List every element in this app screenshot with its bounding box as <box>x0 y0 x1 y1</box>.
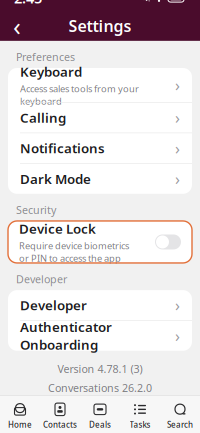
staticText: Search <box>167 419 193 430</box>
button[interactable]: Home <box>0 404 40 429</box>
staticText: Require device biometrics or PIN to acce… <box>19 239 129 264</box>
staticText: Dark Mode <box>20 170 91 188</box>
staticText: Security <box>16 203 56 217</box>
button[interactable]: Keyboard <box>8 68 192 102</box>
staticText: Developer <box>20 296 87 314</box>
staticText: 2:45 <box>14 0 42 8</box>
staticText: Settings <box>68 15 131 36</box>
button[interactable]: Back <box>5 14 29 38</box>
button[interactable]: Developer <box>8 290 192 320</box>
button[interactable]: Notifications <box>8 133 192 163</box>
staticText: ‹ <box>13 9 21 43</box>
button[interactable]: Deals <box>80 404 120 429</box>
staticText: Home <box>8 419 32 430</box>
staticText: Contacts <box>43 419 77 430</box>
button[interactable]: Calling <box>8 103 192 133</box>
button[interactable]: Dark Mode <box>8 164 192 194</box>
staticText: Calling <box>20 109 66 126</box>
staticText: › <box>175 138 180 159</box>
staticText: › <box>175 325 180 346</box>
staticText: Developer <box>16 272 67 286</box>
staticText: Device Lock <box>19 220 96 237</box>
staticText: Keyboard <box>20 63 82 80</box>
staticText: Notifications <box>20 139 105 157</box>
button[interactable]: Device Lock <box>8 221 192 263</box>
staticText: Version 4.78.1 (3) <box>57 362 142 376</box>
button[interactable]: Authenticator Onboarding <box>8 321 192 351</box>
staticText: Tasks <box>129 419 150 430</box>
button[interactable]: Search <box>160 404 200 429</box>
staticText: Deals <box>89 419 111 430</box>
staticText: Access sales tools from your keyboard <box>20 82 139 107</box>
staticText: › <box>175 168 180 189</box>
staticText: › <box>175 74 180 96</box>
staticText: › <box>175 107 180 128</box>
staticText: › <box>175 294 180 316</box>
button[interactable]: Tasks <box>120 404 160 429</box>
staticText: Conversations 26.2.0 <box>48 381 152 395</box>
button[interactable]: Contacts <box>40 404 80 429</box>
staticText: Authenticator Onboarding <box>20 318 112 353</box>
staticText: Preferences <box>16 50 75 64</box>
